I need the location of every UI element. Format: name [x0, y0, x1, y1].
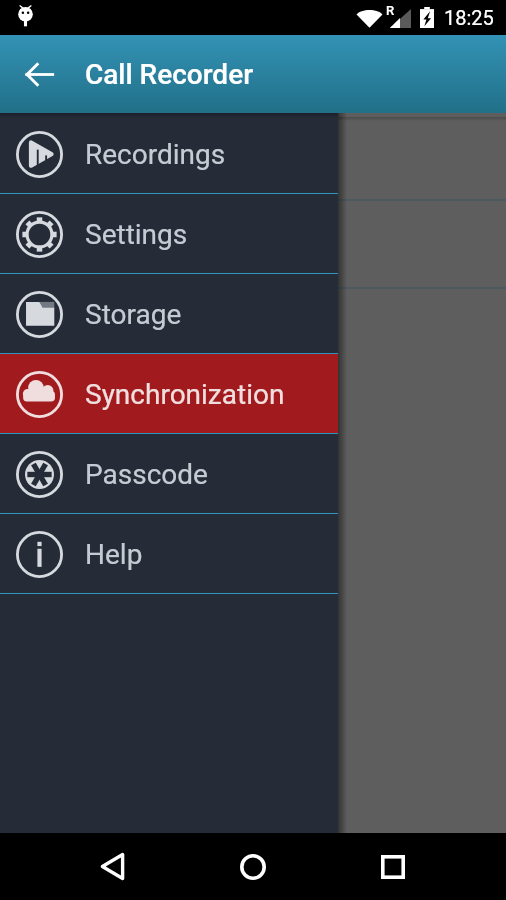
button[interactable]: Settings [0, 194, 338, 274]
button[interactable]: Recent apps [359, 833, 427, 900]
button[interactable]: Storage [0, 274, 338, 354]
button[interactable]: Home [219, 833, 287, 900]
staticText: Call Recorder [85, 58, 254, 91]
staticText: Recordings [85, 138, 226, 171]
staticText: Help [85, 538, 143, 571]
staticText: 18:25 [444, 6, 494, 29]
button[interactable]: Synchronization [0, 354, 338, 434]
button[interactable]: Navigate up [0, 35, 78, 113]
staticText: Synchronization [85, 378, 285, 411]
button[interactable]: Back [78, 833, 146, 900]
staticText: Passcode [85, 458, 208, 491]
button[interactable]: Recordings [0, 114, 338, 194]
staticText: R [386, 3, 395, 18]
staticText: Settings [85, 218, 188, 251]
button[interactable]: Help [0, 514, 338, 594]
staticText: Storage [85, 298, 182, 331]
button[interactable]: Passcode [0, 434, 338, 514]
